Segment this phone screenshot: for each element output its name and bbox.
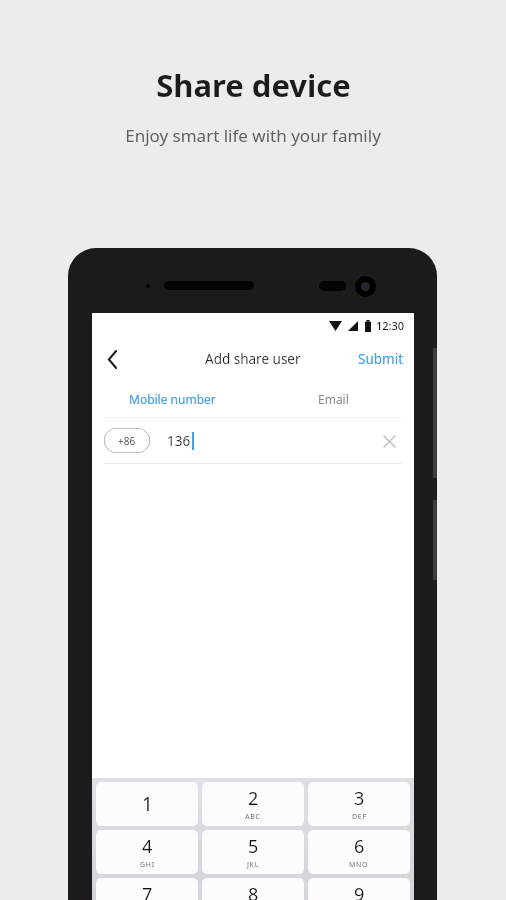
button[interactable]: 7 [96, 878, 198, 900]
button[interactable]: +86 [104, 428, 150, 453]
staticText: Mobile number [129, 391, 216, 407]
button[interactable]: Back [95, 342, 129, 376]
button[interactable]: 2 [202, 782, 304, 826]
button[interactable]: Email [253, 380, 414, 417]
staticText: +86 [118, 434, 136, 448]
staticText: 1 [142, 791, 153, 817]
staticText: Add share user [205, 350, 301, 368]
staticText: 4 [142, 834, 153, 859]
button[interactable]: 1 [96, 782, 198, 826]
staticText: MNO [349, 860, 369, 870]
button[interactable]: Mobile number [92, 380, 253, 417]
staticText: DEF [352, 812, 367, 822]
button[interactable]: Clear [376, 428, 402, 454]
staticText: 136 [167, 432, 191, 450]
staticText: 9 [354, 882, 365, 900]
button[interactable]: 6 [308, 830, 410, 874]
button[interactable]: 4 [96, 830, 198, 874]
staticText: ABC [245, 812, 261, 822]
staticText: 5 [248, 834, 259, 859]
staticText: GHI [140, 860, 155, 870]
staticText: 8 [248, 882, 259, 900]
staticText: Submit [358, 350, 404, 368]
staticText: Share device [156, 64, 351, 106]
staticText: Email [318, 391, 349, 407]
staticText: 2 [248, 786, 259, 811]
staticText: 6 [354, 834, 365, 859]
button[interactable]: 3 [308, 782, 410, 826]
staticText: 3 [354, 786, 365, 811]
staticText: Enjoy smart life with your family [125, 124, 381, 147]
button[interactable]: Submit [348, 343, 414, 375]
staticText: 7 [142, 882, 153, 900]
staticText: 12:30 [376, 318, 405, 333]
button[interactable]: 9 [308, 878, 410, 900]
button[interactable]: 8 [202, 878, 304, 900]
button[interactable]: 5 [202, 830, 304, 874]
staticText: JKL [247, 860, 260, 870]
